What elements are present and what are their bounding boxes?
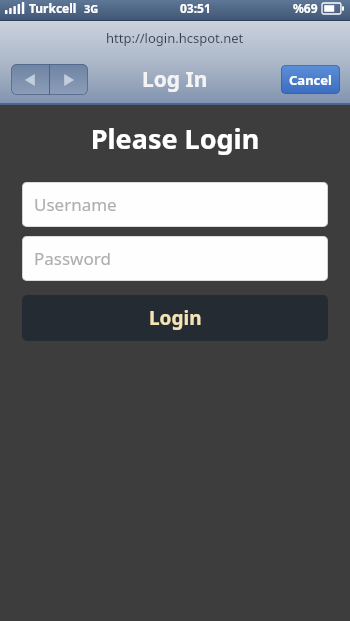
button[interactable]: Cancel [281,65,340,94]
button[interactable]: Back [11,64,49,95]
staticText: 3G [84,1,99,16]
staticText: %69 [293,0,318,16]
button[interactable]: Address bar [0,21,350,55]
staticText: Login [149,305,202,331]
staticText: Log In [142,65,208,94]
staticText: http://login.hcspot.net [106,29,244,47]
staticText: Password [34,247,111,270]
button[interactable]: Login [22,295,328,341]
staticText: Please Login [0,120,350,157]
staticText: Cancel [289,71,332,89]
button[interactable]: Password [22,236,328,281]
staticText: Turkcell [29,0,77,16]
button[interactable]: Username [22,182,328,227]
staticText: 03:51 [180,0,211,16]
button[interactable]: Forward [50,64,88,95]
staticText: Username [34,193,117,216]
